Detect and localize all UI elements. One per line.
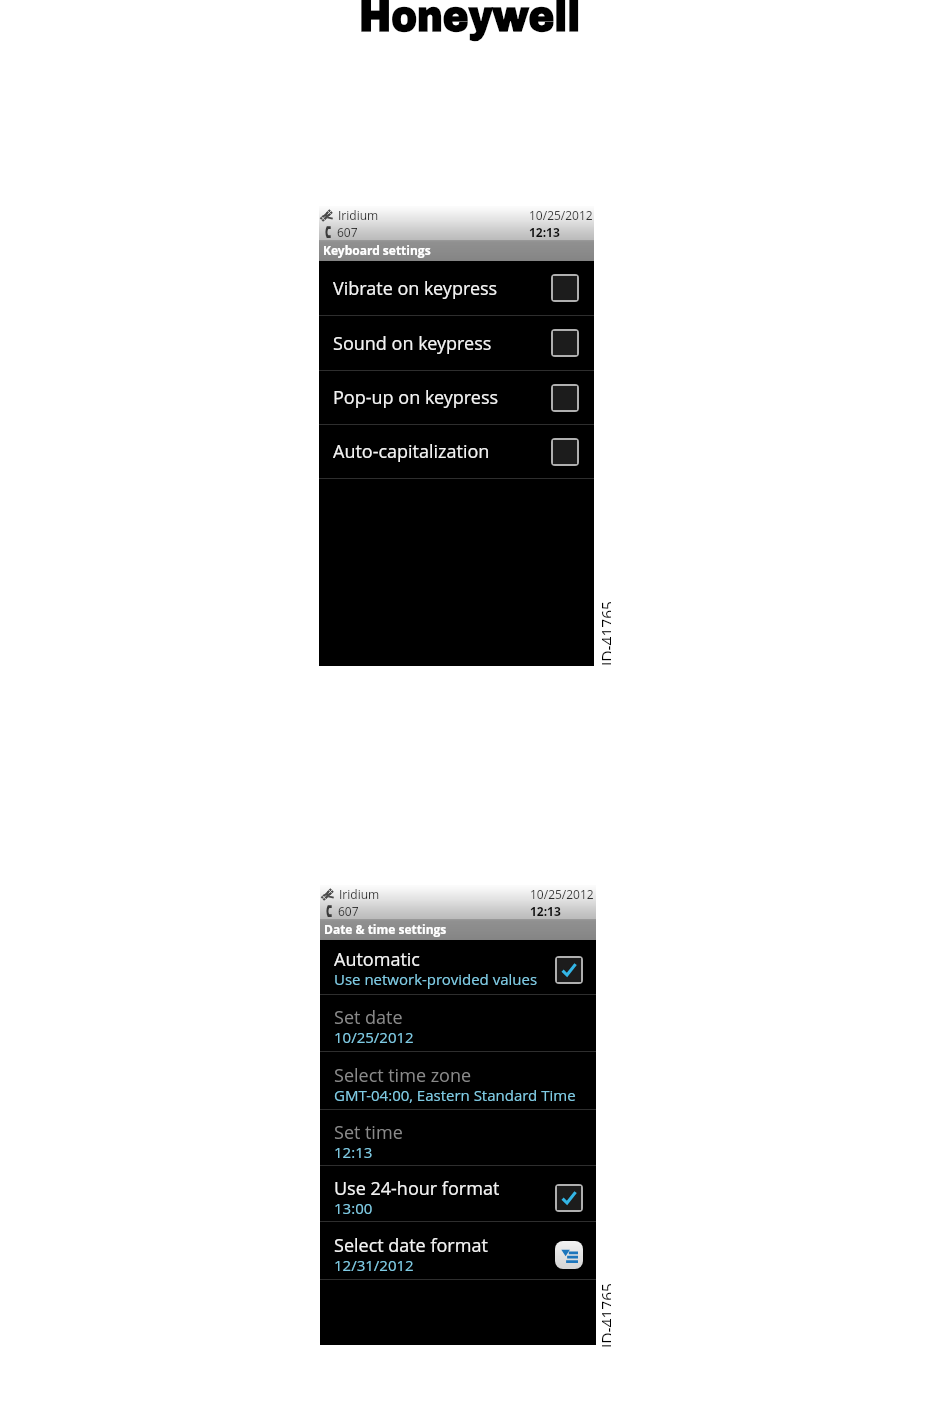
button[interactable]: Automatic bbox=[320, 940, 596, 994]
button[interactable]: Sound on keypress bbox=[551, 329, 579, 357]
staticText: Select time zone bbox=[334, 1063, 472, 1088]
button[interactable]: Automatic bbox=[555, 956, 583, 984]
button[interactable]: Select date format bbox=[320, 1222, 596, 1279]
staticText: Select date format bbox=[334, 1233, 488, 1258]
staticText: Keyboard settings bbox=[323, 242, 431, 258]
staticText: 13:00 bbox=[334, 1198, 373, 1218]
staticText: Auto-capitalization bbox=[333, 439, 490, 464]
button[interactable]: Pop-up on keypress bbox=[319, 371, 594, 424]
staticText: Honeywell bbox=[359, 0, 580, 40]
staticText: Automatic bbox=[334, 947, 420, 972]
staticText: Set time bbox=[334, 1120, 403, 1145]
staticText: ID-417656 bbox=[597, 1278, 611, 1348]
button[interactable]: Select date format bbox=[555, 1241, 583, 1269]
staticText: 12/31/2012 bbox=[334, 1255, 414, 1275]
staticText: Pop-up on keypress bbox=[333, 385, 499, 410]
button[interactable]: Vibrate on keypress bbox=[551, 274, 579, 302]
staticText: Vibrate on keypress bbox=[333, 276, 498, 301]
staticText: Iridium bbox=[339, 886, 380, 902]
button[interactable]: Auto-capitalization bbox=[319, 425, 594, 478]
button[interactable]: Use 24-hour format bbox=[320, 1166, 596, 1221]
button[interactable]: Set time bbox=[320, 1110, 596, 1165]
staticText: GMT-04:00, Eastern Standard Time bbox=[334, 1085, 576, 1105]
staticText: 10/25/2012 bbox=[529, 207, 593, 223]
button[interactable]: Select time zone bbox=[320, 1052, 596, 1109]
staticText: ID-417655 bbox=[597, 596, 611, 666]
staticText: Iridium bbox=[338, 207, 379, 223]
button[interactable]: Auto-capitalization bbox=[551, 438, 579, 466]
staticText: 607 bbox=[338, 903, 359, 919]
staticText: 12:13 bbox=[334, 1142, 373, 1162]
staticText: Use 24-hour format bbox=[334, 1176, 500, 1201]
button[interactable]: Set date bbox=[320, 995, 596, 1051]
staticText: 12:13 bbox=[530, 903, 561, 919]
button[interactable]: Sound on keypress bbox=[319, 316, 594, 370]
staticText: 10/25/2012 bbox=[530, 886, 594, 902]
button[interactable]: Use 24-hour format bbox=[555, 1184, 583, 1212]
staticText: Date & time settings bbox=[324, 921, 447, 937]
button[interactable]: Pop-up on keypress bbox=[551, 384, 579, 412]
staticText: 10/25/2012 bbox=[334, 1027, 414, 1047]
staticText: Sound on keypress bbox=[333, 331, 492, 356]
button[interactable]: Vibrate on keypress bbox=[319, 261, 594, 315]
staticText: 12:13 bbox=[529, 224, 560, 240]
staticText: 607 bbox=[337, 224, 358, 240]
staticText: Set date bbox=[334, 1005, 403, 1030]
staticText: Use network-provided values bbox=[334, 969, 538, 989]
